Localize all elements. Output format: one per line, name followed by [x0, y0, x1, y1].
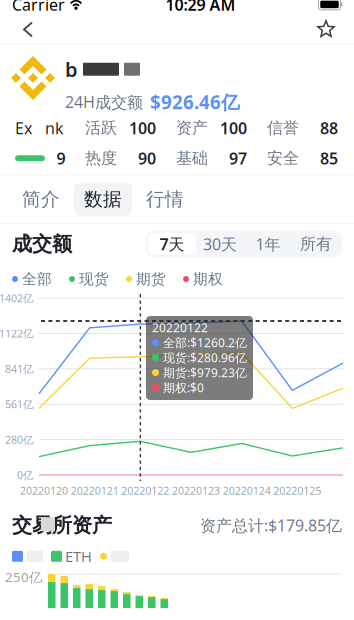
staticText: 基础 [176, 148, 208, 168]
staticText: 交易所资产 [12, 513, 112, 538]
staticText: 热度 [85, 148, 117, 168]
button[interactable]: 简介 [12, 183, 70, 216]
staticText: 9 [56, 148, 65, 169]
button[interactable]: 30天 [196, 233, 244, 255]
staticText: 10:29 AM [165, 0, 235, 15]
staticText: 全部 [22, 270, 52, 288]
staticText: 期货:$979.23亿 [163, 365, 247, 380]
staticText: 数据 [84, 188, 122, 211]
staticText: 841亿 [5, 362, 34, 376]
staticText: Carrier [12, 0, 65, 15]
staticText: 100 [129, 117, 156, 139]
staticText: 安全 [267, 148, 299, 168]
staticText: 所有 [300, 234, 332, 254]
button[interactable]: 数据 [74, 183, 132, 216]
staticText: 7天 [159, 233, 184, 255]
staticText: 成交额 [12, 232, 72, 256]
staticText: 1402亿 [0, 291, 34, 305]
staticText: 20220122 [152, 320, 208, 335]
button[interactable]: 7天 [148, 233, 196, 255]
staticText: 20220121 [71, 483, 119, 498]
staticText: nk [45, 117, 64, 139]
staticText: 100 [220, 117, 247, 139]
staticText: b [65, 56, 78, 83]
staticText: 85 [320, 148, 338, 169]
staticText: 250亿 [5, 568, 42, 586]
staticText: 活跃 [85, 118, 117, 138]
staticText: 280亿 [5, 433, 34, 447]
staticText: 行情 [146, 188, 184, 211]
staticText: 20220120 [20, 483, 68, 498]
staticText: 现货 [79, 270, 109, 288]
staticText: 20220123 [172, 483, 220, 498]
staticText: 1年 [255, 233, 280, 255]
staticText: 88 [320, 117, 338, 139]
staticText: 全部:$1260.2亿 [163, 335, 247, 350]
staticText: 97 [229, 148, 247, 169]
staticText: 20220124 [223, 483, 271, 498]
staticText: 90 [138, 148, 156, 169]
staticText: 1122亿 [0, 326, 34, 340]
button[interactable]: 所有 [292, 233, 340, 255]
staticText: 期货 [136, 270, 166, 288]
staticText: 0亿 [17, 468, 34, 482]
staticText: 信誉 [267, 118, 299, 138]
staticText: 简介 [22, 188, 60, 211]
button[interactable]: Back [8, 11, 48, 47]
staticText: 资产总计:$179.85亿 [200, 515, 342, 536]
staticText: 30天 [203, 233, 237, 255]
staticText: 20220122 [121, 483, 169, 498]
staticText: 24H成交额 [65, 91, 143, 112]
button[interactable]: Favorite [306, 11, 346, 47]
staticText: 20220125 [273, 483, 321, 498]
staticText: 资产 [176, 118, 208, 138]
staticText: 561亿 [5, 397, 34, 411]
staticText: ETH [65, 547, 92, 566]
staticText: $926.46亿 [150, 89, 240, 114]
staticText: 期权:$0 [163, 380, 204, 395]
staticText: 现货:$280.96亿 [163, 350, 247, 365]
button[interactable]: 行情 [136, 183, 194, 216]
button[interactable]: 1年 [244, 233, 292, 255]
staticText: Ex [15, 117, 32, 139]
staticText: 期权 [193, 270, 223, 288]
